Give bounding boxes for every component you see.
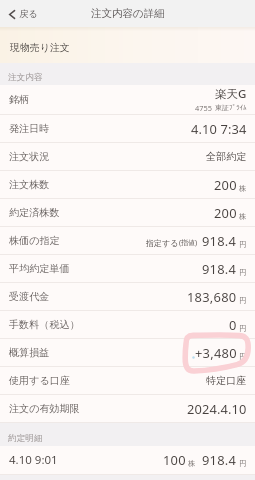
- button[interactable]: 使用する口座: [0, 367, 255, 395]
- button[interactable]: 約定済株数: [0, 199, 255, 227]
- staticText: 約定明細: [8, 433, 43, 444]
- staticText: +3,480: [195, 344, 237, 362]
- staticText: 918.4: [202, 260, 237, 278]
- staticText: 手数料（税込）: [9, 318, 80, 331]
- staticText: 200: [214, 204, 237, 222]
- staticText: 東証ﾌﾟﾗｲﾑ: [215, 103, 247, 112]
- staticText: 全部約定: [206, 150, 247, 163]
- staticText: 約定済株数: [9, 206, 60, 219]
- staticText: 4755: [195, 103, 212, 113]
- staticText: 指定する: [146, 238, 179, 248]
- staticText: 株価の指定: [9, 234, 60, 247]
- staticText: 円: [239, 240, 247, 249]
- button[interactable]: 発注日時: [0, 115, 255, 143]
- staticText: 0: [229, 316, 237, 334]
- staticText: 楽天G: [215, 86, 247, 102]
- staticText: 銘柄: [9, 93, 30, 106]
- staticText: 100: [163, 451, 186, 469]
- staticText: 円: [239, 268, 247, 277]
- button[interactable]: 概算損益: [0, 339, 255, 367]
- button[interactable]: 受渡代金: [0, 283, 255, 311]
- button[interactable]: 戻る: [0, 4, 46, 24]
- staticText: 株: [188, 459, 196, 468]
- staticText: 注文状況: [9, 150, 50, 163]
- staticText: 特定口座: [206, 374, 247, 387]
- staticText: 4.10 7:34: [191, 120, 247, 138]
- staticText: 183,680: [187, 288, 237, 306]
- staticText: 円: [239, 324, 247, 333]
- staticText: 注文内容の詳細: [91, 7, 165, 20]
- staticText: 円: [239, 296, 247, 305]
- staticText: 株: [239, 184, 247, 193]
- button[interactable]: 注文の有効期限: [0, 395, 255, 423]
- button[interactable]: 銘柄: [0, 85, 255, 115]
- staticText: 現物売り注文: [10, 41, 70, 53]
- staticText: 2024.4.10: [187, 400, 247, 418]
- staticText: 平均約定単価: [9, 262, 70, 275]
- staticText: 注文株数: [9, 178, 50, 191]
- staticText: 発注日時: [9, 122, 50, 135]
- staticText: (指値): [179, 238, 198, 248]
- staticText: 受渡代金: [9, 290, 50, 303]
- button[interactable]: 注文株数: [0, 171, 255, 199]
- staticText: 注文内容: [8, 72, 43, 83]
- staticText: 918.4: [202, 232, 237, 250]
- staticText: 注文の有効期限: [9, 402, 80, 415]
- button[interactable]: 株価の指定: [0, 227, 255, 255]
- staticText: 概算損益: [9, 346, 50, 359]
- staticText: 200: [214, 176, 237, 194]
- staticText: 株: [239, 212, 247, 221]
- staticText: 円: [239, 352, 247, 361]
- button[interactable]: 注文状況: [0, 143, 255, 171]
- staticText: 円: [239, 459, 247, 468]
- staticText: 4.10 9:01: [9, 452, 58, 468]
- staticText: 戻る: [19, 8, 38, 20]
- staticText: 918.4: [202, 451, 237, 469]
- button[interactable]: 4.10 9:01: [0, 446, 255, 475]
- button[interactable]: 平均約定単価: [0, 255, 255, 283]
- button[interactable]: 手数料（税込）: [0, 311, 255, 339]
- staticText: 使用する口座: [9, 374, 71, 387]
